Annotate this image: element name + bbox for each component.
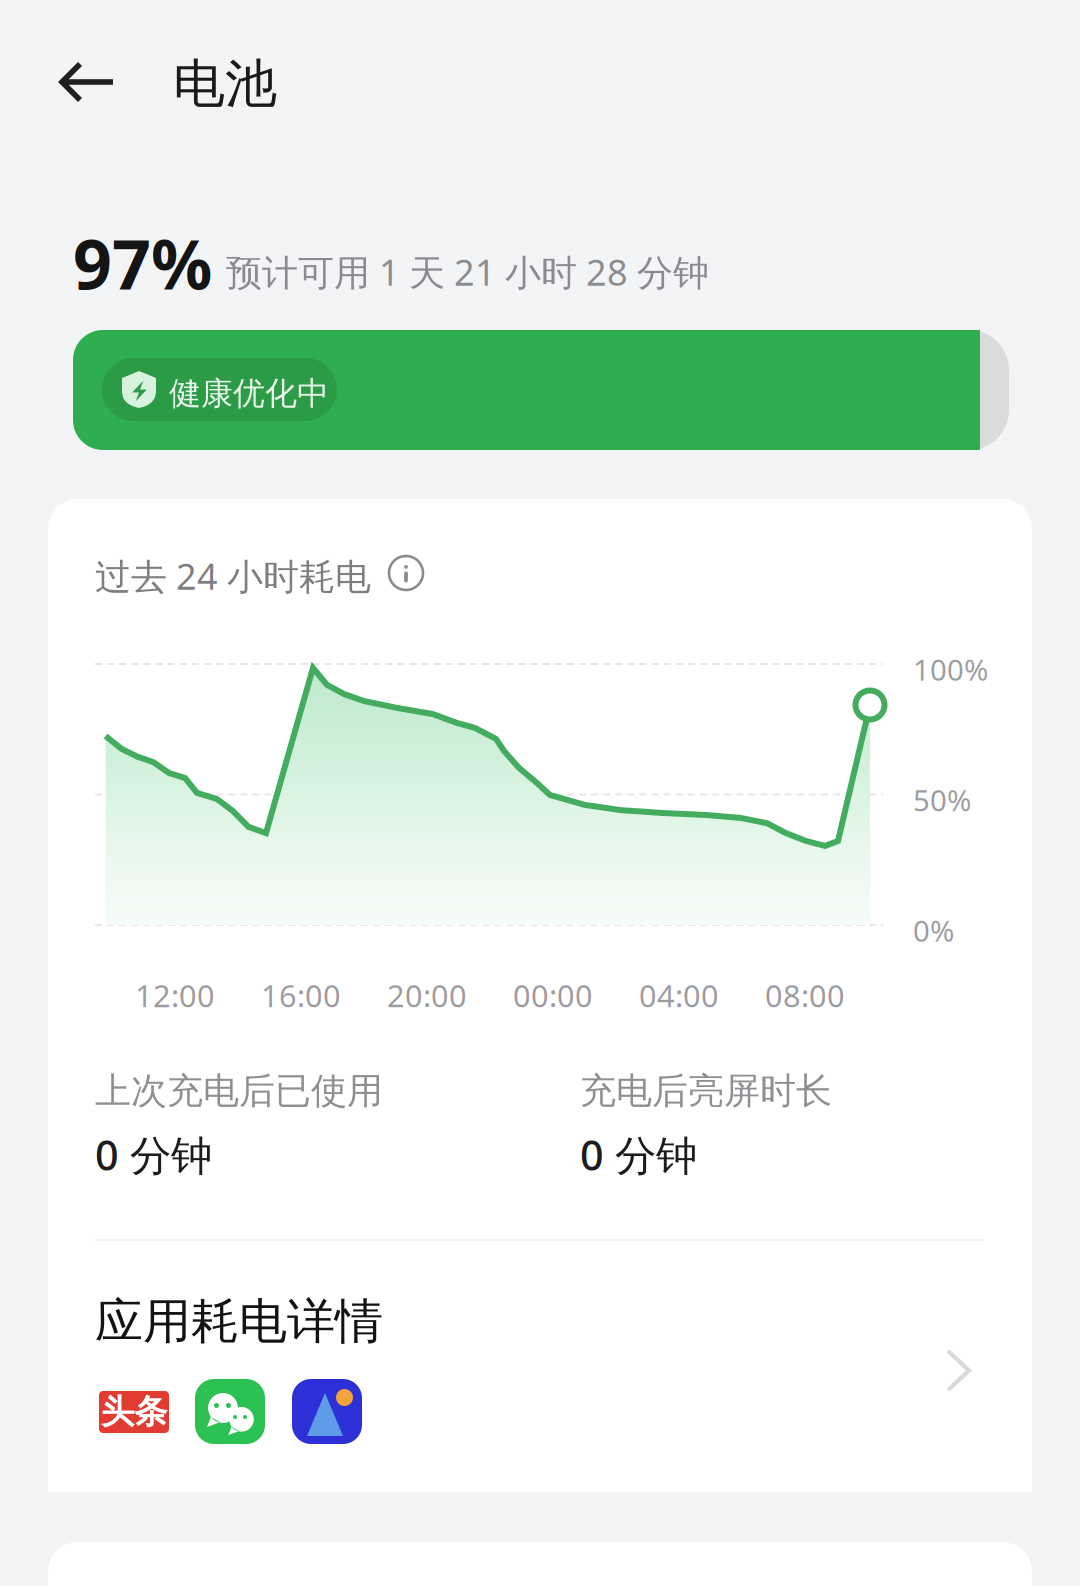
button[interactable]: 应用耗电详情 bbox=[48, 1250, 1032, 1492]
staticText: 08:00 bbox=[765, 975, 845, 1016]
staticText: 00:00 bbox=[513, 975, 593, 1016]
staticText: 健康优化中 bbox=[169, 374, 329, 413]
staticText: 50% bbox=[913, 780, 971, 819]
staticText: 0 分钟 bbox=[95, 1127, 212, 1182]
button[interactable]: Back bbox=[42, 44, 133, 120]
staticText: 过去 24 小时耗电 bbox=[95, 552, 371, 600]
staticText: 16:00 bbox=[261, 975, 341, 1016]
staticText: 100% bbox=[913, 650, 988, 689]
staticText: 20:00 bbox=[387, 975, 467, 1016]
button[interactable]: About battery usage bbox=[389, 556, 423, 590]
staticText: 上次充电后已使用 bbox=[95, 1069, 383, 1113]
staticText: 0 分钟 bbox=[580, 1127, 697, 1182]
staticText: 04:00 bbox=[639, 975, 719, 1016]
staticText: 充电后亮屏时长 bbox=[580, 1069, 832, 1113]
staticText: 电池 bbox=[173, 52, 277, 116]
staticText: 97% bbox=[73, 218, 212, 308]
staticText: 头条 bbox=[101, 1391, 167, 1432]
staticText: 应用耗电详情 bbox=[95, 1292, 383, 1351]
staticText: 12:00 bbox=[135, 975, 215, 1016]
staticText: 预计可用 1 天 21 小时 28 分钟 bbox=[226, 248, 709, 296]
staticText: 0% bbox=[913, 911, 954, 950]
